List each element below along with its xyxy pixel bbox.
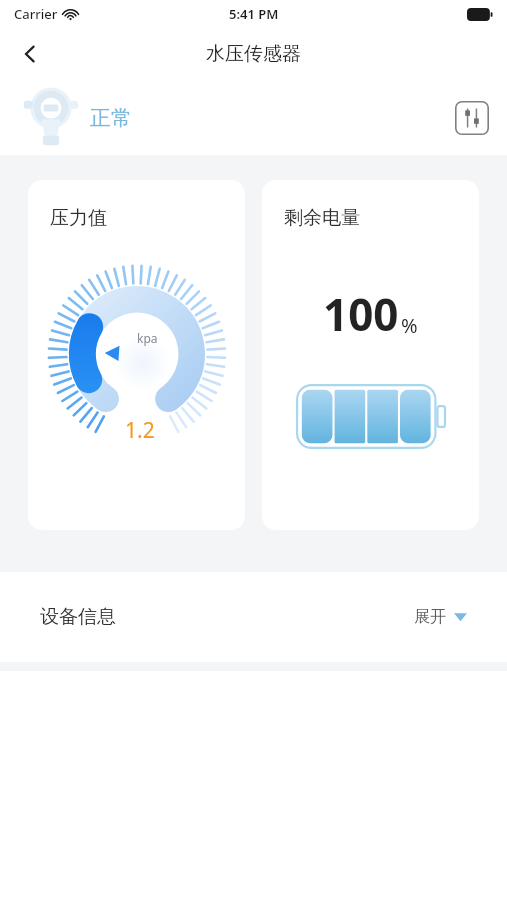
staticText: 设备信息 xyxy=(40,605,116,629)
staticText: 1.2 xyxy=(125,416,155,445)
button[interactable]: 设备信息 xyxy=(0,572,507,662)
staticText: 剩余电量 xyxy=(284,206,360,230)
staticText: 5:41 PM xyxy=(229,5,279,23)
button[interactable]: Back xyxy=(8,32,52,76)
staticText: kpa xyxy=(137,330,158,346)
staticText: 压力值 xyxy=(50,206,107,230)
staticText: 展开 xyxy=(414,607,446,627)
staticText: 100 xyxy=(323,284,399,344)
button[interactable]: 剩余电量 xyxy=(262,180,479,530)
staticText: % xyxy=(401,312,418,339)
button[interactable]: 压力值 xyxy=(28,180,245,530)
staticText: Carrier xyxy=(14,5,58,23)
button[interactable]: Settings xyxy=(455,101,489,135)
staticText: 水压传感器 xyxy=(206,42,301,66)
staticText: 正常 xyxy=(90,105,132,131)
